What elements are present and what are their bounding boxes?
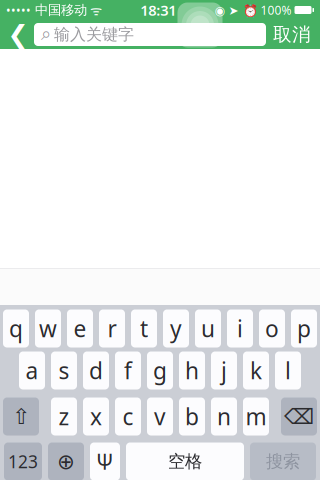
button[interactable]: h [179,351,205,389]
staticText: t [140,313,148,343]
button[interactable]: t [131,309,157,347]
button[interactable]: e [67,309,93,347]
button[interactable]: v [147,397,173,435]
button[interactable]: p [291,309,317,347]
button[interactable]: Space [126,442,244,480]
button[interactable]: a [19,351,45,389]
staticText: 搜索 [266,451,300,472]
staticText: v [154,401,166,431]
button[interactable]: f [115,351,141,389]
staticText: j [221,355,227,385]
button[interactable]: c [115,397,141,435]
button[interactable]: u [195,309,221,347]
staticText: e [73,313,86,343]
button[interactable]: x [83,397,109,435]
staticText: u [201,313,215,343]
button[interactable]: Numbers [4,442,42,480]
button[interactable]: w [35,309,61,347]
button[interactable]: 取消 [266,20,318,49]
staticText: n [217,401,231,431]
button[interactable]: l [275,351,301,389]
button[interactable]: Dictation [90,442,120,480]
staticText: h [185,355,199,385]
staticText: 18:31 [140,0,176,20]
staticText: d [89,355,103,385]
staticText: y [170,313,182,343]
staticText: s [58,355,69,385]
staticText: 中国移动 [31,2,87,18]
staticText: o [265,313,279,343]
staticText: w [39,313,57,343]
button[interactable]: Shift [3,397,39,435]
staticText: x [90,401,102,431]
staticText: l [285,355,291,385]
staticText: q [9,313,23,343]
staticText: ⊕ [57,449,75,474]
staticText: c [122,401,133,431]
button[interactable]: n [211,397,237,435]
button[interactable]: b [179,397,205,435]
button[interactable]: y [163,309,189,347]
staticText: 输入关键字 [54,25,134,44]
staticText: p [297,313,311,343]
staticText: a [25,355,38,385]
button[interactable]: q [3,309,29,347]
staticText: i [237,313,243,343]
button[interactable]: i [227,309,253,347]
button[interactable]: ⌕ [34,23,266,46]
staticText: ᯤ [87,1,102,19]
staticText: 取消 [273,23,311,46]
staticText: g [153,355,167,385]
button[interactable]: Search [250,442,316,480]
button[interactable]: s [51,351,77,389]
staticText: Ψ [96,447,114,476]
staticText: k [250,355,262,385]
button[interactable]: r [99,309,125,347]
staticText: 空格 [168,451,202,472]
staticText: m [245,401,266,431]
button[interactable]: g [147,351,173,389]
staticText: ⌕ [41,25,51,44]
button[interactable]: Delete [281,397,317,435]
staticText: ◉ ➤ ⏰ 100% [214,2,291,18]
button[interactable]: Back [2,20,34,49]
staticText: r [107,313,116,343]
staticText: f [124,355,132,385]
staticText: 123 [8,450,38,473]
button[interactable]: j [211,351,237,389]
staticText: ❮ [7,20,28,49]
button[interactable]: k [243,351,269,389]
staticText: ⇧ [12,404,30,429]
staticText: ⌫ [284,404,314,429]
staticText: b [185,401,199,431]
staticText: ••••• [6,2,31,18]
button[interactable]: Next keyboard [48,442,84,480]
button[interactable]: m [243,397,269,435]
button[interactable]: d [83,351,109,389]
staticText: z [58,401,69,431]
button[interactable]: o [259,309,285,347]
button[interactable]: z [51,397,77,435]
